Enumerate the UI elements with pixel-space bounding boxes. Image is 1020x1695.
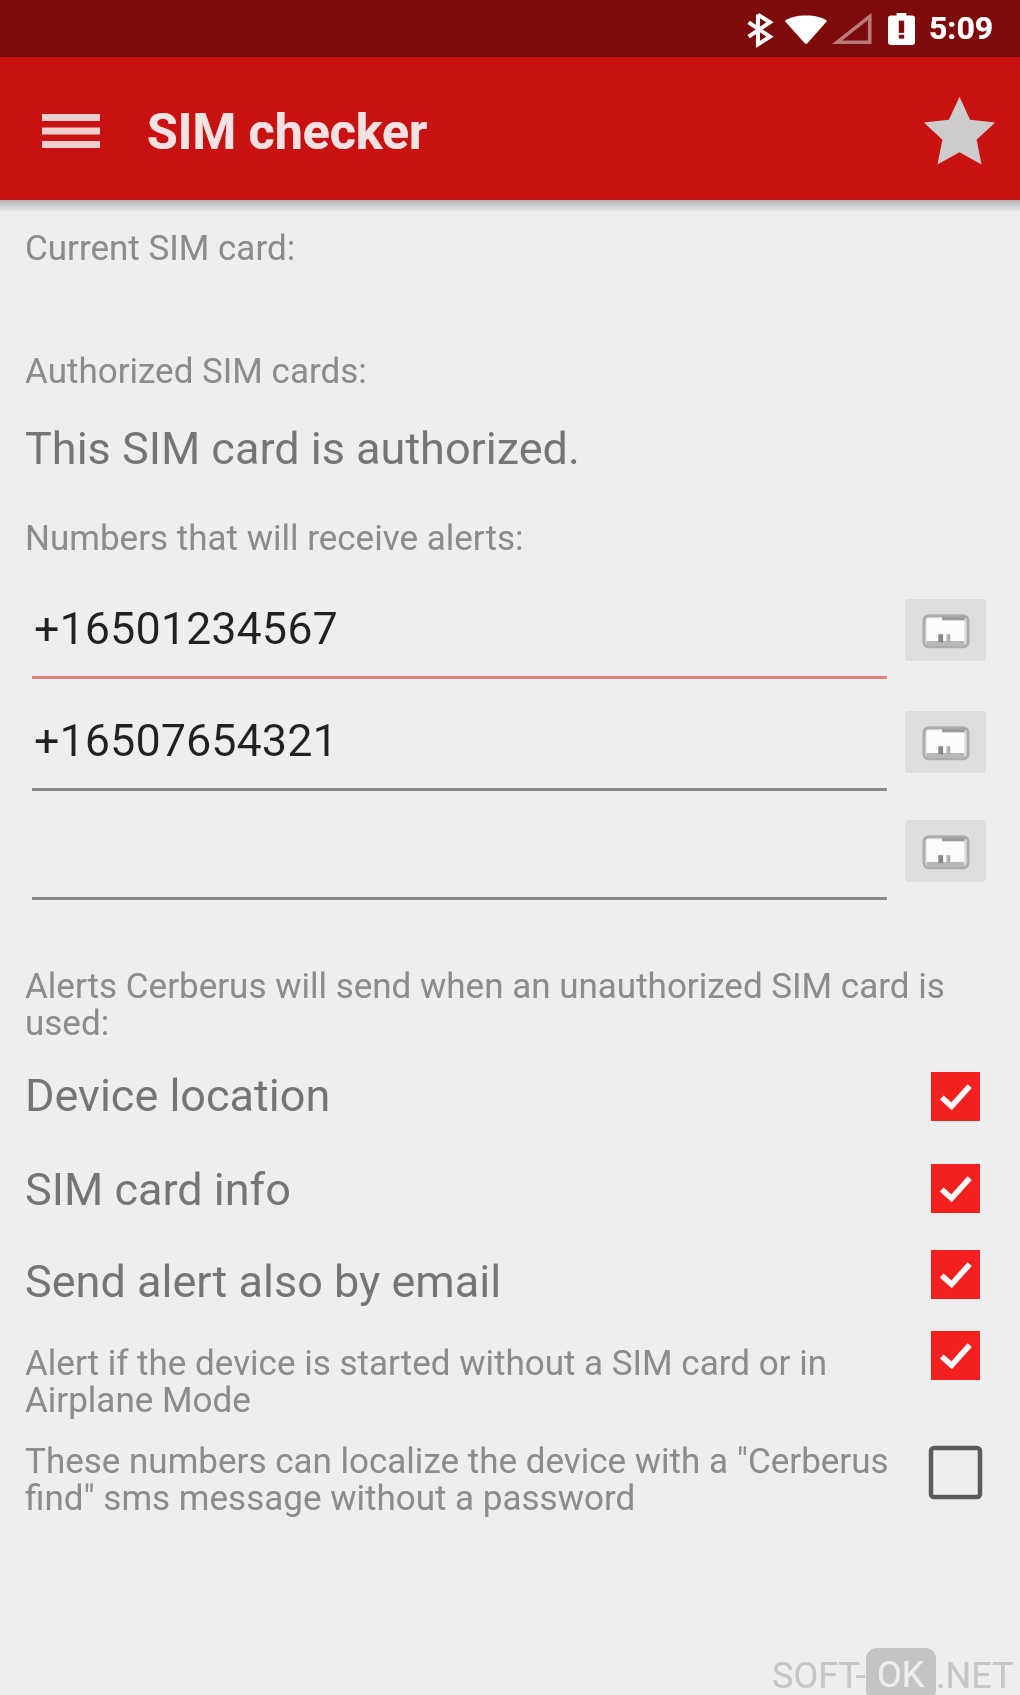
button[interactable]: Phone number field: [32, 598, 887, 682]
button[interactable]: [0, 1142, 1020, 1212]
staticText: Alert if the device is started without a…: [25, 1343, 915, 1421]
staticText: Alerts Cerberus will send when an unauth…: [25, 966, 960, 1044]
staticText: +16501234567: [34, 602, 338, 655]
staticText: Authorized SIM cards:: [25, 351, 367, 392]
staticText: This SIM card is authorized.: [25, 422, 580, 475]
button[interactable]: Checked option: [918, 1318, 992, 1392]
button[interactable]: Phone number field: [32, 710, 887, 794]
staticText: .NET: [936, 1655, 1014, 1695]
staticText: SIM card info: [25, 1163, 915, 1216]
staticText: 5:09: [929, 9, 994, 47]
button[interactable]: [0, 1309, 1020, 1379]
staticText: OK: [877, 1654, 925, 1695]
button[interactable]: Phone number field: [32, 819, 887, 903]
staticText: +16507654321: [34, 714, 338, 767]
staticText: SOFT-: [772, 1655, 866, 1695]
staticText: Current SIM card:: [25, 228, 296, 269]
staticText: SIM checker: [147, 103, 428, 162]
button[interactable]: Pick contact: [905, 711, 986, 773]
button[interactable]: [0, 1426, 1020, 1496]
button[interactable]: [0, 1050, 1020, 1120]
button[interactable]: Checked option: [918, 1237, 992, 1311]
button[interactable]: Unchecked option: [918, 1435, 992, 1509]
button[interactable]: Favorite: [905, 76, 1013, 184]
button[interactable]: Open navigation menu: [30, 92, 112, 170]
button[interactable]: Checked option: [918, 1151, 992, 1225]
staticText: Device location: [25, 1069, 915, 1122]
staticText: Send alert also by email: [25, 1255, 915, 1308]
button[interactable]: Pick contact: [905, 599, 986, 661]
button[interactable]: [0, 1228, 1020, 1298]
staticText: Numbers that will receive alerts:: [25, 518, 524, 559]
staticText: These numbers can localize the device wi…: [25, 1441, 915, 1519]
button[interactable]: Pick contact: [905, 820, 986, 882]
button[interactable]: Checked option: [918, 1059, 992, 1133]
